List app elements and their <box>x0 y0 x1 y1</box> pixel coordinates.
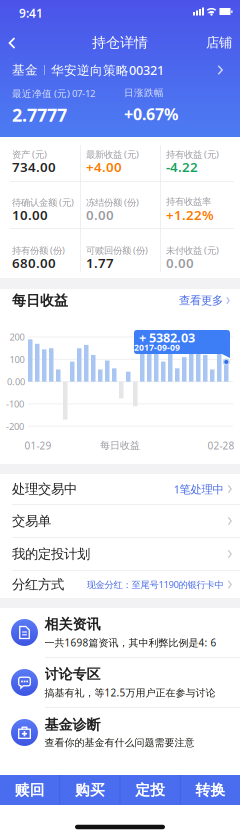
staticText: 最新收益 (元) <box>86 148 139 160</box>
staticText: 持有份额 (份) <box>12 244 65 256</box>
staticText: -4.22 <box>166 158 198 176</box>
button[interactable]: 相关资讯 <box>0 608 240 657</box>
staticText: 10.00 <box>12 206 48 224</box>
staticText: 赎回 <box>15 781 45 799</box>
staticText: 每日收益 <box>100 439 140 452</box>
staticText: 冻结份额 (份) <box>86 196 139 208</box>
staticText: 1笔处理中 <box>173 481 223 496</box>
staticText: 华安逆向策略00321 <box>51 62 164 78</box>
button[interactable]: 转换 <box>181 775 240 805</box>
button[interactable]: 分红方式 <box>0 571 240 598</box>
button[interactable]: 赎回 <box>0 775 59 805</box>
staticText: 持有收益 (元) <box>166 148 219 160</box>
staticText: 资产 (元) <box>12 148 47 160</box>
staticText: 查看更多 <box>179 293 223 307</box>
staticText: 680.00 <box>12 254 56 272</box>
button[interactable]: 讨论专区 <box>0 658 240 707</box>
staticText: 2.7777 <box>12 103 67 127</box>
button[interactable]: 处理交易中 <box>0 474 240 504</box>
staticText: 0.00 <box>166 254 194 272</box>
staticText: 相关资讯 <box>44 616 100 633</box>
staticText: 2017-09-09 <box>134 342 180 353</box>
staticText: -200 <box>6 420 24 432</box>
staticText: +1.22% <box>166 206 214 224</box>
button[interactable]: 查看更多 <box>179 293 230 307</box>
button[interactable]: 交易单 <box>0 505 240 537</box>
button[interactable]: 我的定投计划 <box>0 538 240 570</box>
button[interactable]: 店铺 <box>206 34 232 51</box>
staticText: 日涨跌幅 <box>124 87 164 99</box>
staticText: 可赎回份额 (份) <box>86 244 148 256</box>
staticText: 持有收益率 <box>166 196 211 207</box>
staticText: 待确认金额 (元) <box>12 196 74 208</box>
staticText: 0.00 <box>7 375 25 388</box>
staticText: +0.67% <box>124 103 178 124</box>
button[interactable]: 定投 <box>120 775 180 805</box>
staticText: +4.00 <box>86 158 122 176</box>
staticText: 02-28 <box>207 439 234 452</box>
staticText: 100 <box>9 353 24 365</box>
staticText: 交易单 <box>12 513 51 529</box>
staticText: 定投 <box>135 781 165 799</box>
staticText: 我的定投计划 <box>12 546 90 562</box>
button[interactable] <box>8 37 16 49</box>
staticText: 01-29 <box>24 439 51 452</box>
staticText: 基金诊断 <box>44 716 100 733</box>
staticText: -100 <box>6 398 24 410</box>
staticText: 200 <box>9 331 24 343</box>
staticText: 查看你的基金有什么问题需要注意 <box>44 736 194 749</box>
staticText: 734.00 <box>12 158 56 176</box>
staticText: 9:41 <box>19 5 43 21</box>
staticText: 转换 <box>195 781 225 799</box>
staticText: 基金 <box>12 62 38 78</box>
staticText: 店铺 <box>206 34 232 51</box>
staticText: 处理交易中 <box>12 481 77 497</box>
staticText: 购买 <box>75 781 105 799</box>
button[interactable]: 基金 <box>0 57 240 83</box>
staticText: 最近净值 (元) 07-12 <box>12 87 95 100</box>
staticText: + 5382.03 <box>139 329 195 346</box>
staticText: 分红方式 <box>12 576 64 593</box>
staticText: 每日收益 <box>12 292 68 309</box>
staticText: 0.00 <box>86 206 114 224</box>
button[interactable]: 购买 <box>60 775 119 805</box>
staticText: 1.77 <box>86 254 114 272</box>
staticText: 持仓详情 <box>92 34 148 51</box>
staticText: 搞基有礼，等12.5万用户正在参与讨论 <box>44 686 215 699</box>
staticText: 现金分红：至尾号1190的银行卡中 <box>86 578 223 591</box>
button[interactable]: 基金诊断 <box>0 708 240 757</box>
staticText: 未付收益 (元) <box>166 244 219 256</box>
staticText: 一共1698篇资讯，其中利弊比例是4: 6 <box>44 636 216 649</box>
staticText: 讨论专区 <box>44 666 100 683</box>
